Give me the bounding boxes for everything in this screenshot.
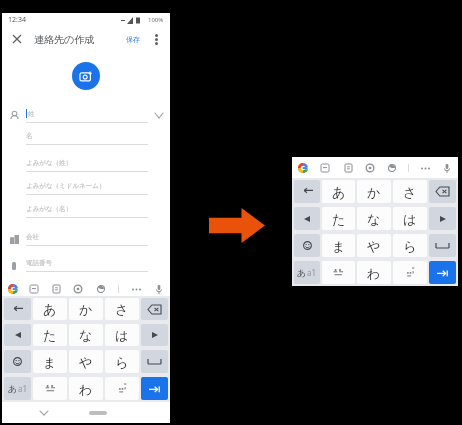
staticText: わ <box>79 381 93 397</box>
button[interactable]: 会社 <box>2 228 170 251</box>
staticText: た <box>332 211 346 227</box>
button[interactable]: Cursor left <box>294 207 320 230</box>
button[interactable]: Undo <box>4 298 31 320</box>
staticText: か <box>367 184 381 200</box>
staticText: は <box>403 211 417 227</box>
button[interactable]: Clipboard <box>50 283 62 295</box>
button[interactable]: Cursor right <box>429 207 456 230</box>
button[interactable]: Stickers <box>28 283 40 295</box>
staticText: あ <box>8 383 18 394</box>
button[interactable]: や <box>357 234 391 257</box>
button[interactable]: Themes <box>386 162 398 174</box>
staticText: か <box>79 301 93 317</box>
button[interactable]: わ <box>357 261 391 284</box>
button[interactable]: Google <box>297 162 308 173</box>
staticText: 12:34 <box>8 15 26 25</box>
button[interactable]: Back <box>35 404 53 422</box>
staticText: な <box>367 211 381 227</box>
button[interactable]: 保存 <box>124 35 142 44</box>
staticText: 名 <box>26 132 33 140</box>
button[interactable]: Home <box>89 411 107 415</box>
button[interactable]: な <box>357 207 391 230</box>
button[interactable]: よみがな（名） <box>2 200 170 223</box>
button[interactable]: さ <box>393 180 427 203</box>
button[interactable]: あ <box>322 180 355 203</box>
button[interactable]: ま <box>322 234 355 257</box>
button[interactable]: は <box>105 324 139 346</box>
staticText: 連絡先の作成 <box>34 33 95 46</box>
button[interactable]: Enter <box>429 261 456 284</box>
button[interactable]: More <box>419 162 431 174</box>
button[interactable]: Clipboard <box>342 162 354 174</box>
staticText: や <box>79 354 93 370</box>
button[interactable]: た <box>33 324 67 346</box>
staticText: a1 <box>18 383 28 394</box>
button[interactable]: 名 <box>2 127 170 150</box>
staticText: あ <box>297 267 307 278</box>
button[interactable]: た <box>322 207 355 230</box>
button[interactable]: さ <box>105 298 139 320</box>
button[interactable]: よみがな（姓） <box>2 154 170 177</box>
staticText: 姓 <box>28 110 35 118</box>
button[interactable]: Enter <box>141 377 168 400</box>
button[interactable]: Voice input <box>441 162 453 174</box>
button[interactable]: ら <box>105 350 139 373</box>
button[interactable]: Themes <box>95 283 107 295</box>
button[interactable]: わ <box>69 377 103 400</box>
button[interactable]: Settings <box>72 283 84 295</box>
button[interactable]: Cursor left <box>4 324 31 346</box>
button[interactable]: は <box>393 207 427 230</box>
staticText: 会社 <box>26 233 39 241</box>
staticText: 電話番号 <box>26 259 52 267</box>
staticText: ま <box>332 238 346 254</box>
staticText: さ <box>403 184 417 200</box>
staticText: よみがな（ミドルネーム） <box>26 182 106 190</box>
button[interactable]: Space <box>141 350 168 373</box>
button[interactable]: Backspace <box>429 180 456 203</box>
button[interactable]: Close <box>9 31 25 47</box>
button[interactable]: Punctuation <box>105 377 139 400</box>
button[interactable]: Punctuation <box>393 261 427 284</box>
staticText: a1 <box>307 267 317 278</box>
button[interactable]: ま <box>33 350 67 373</box>
staticText: は <box>115 327 129 343</box>
button[interactable]: や <box>69 350 103 373</box>
button[interactable]: Settings <box>364 162 376 174</box>
staticText: あ <box>43 301 57 317</box>
button[interactable]: Stickers <box>319 162 331 174</box>
button[interactable]: ら <box>393 234 427 257</box>
button[interactable]: か <box>357 180 391 203</box>
staticText: さ <box>115 301 129 317</box>
staticText: 保存 <box>126 35 140 44</box>
button[interactable]: 姓 <box>2 104 170 127</box>
button[interactable]: な <box>69 324 103 346</box>
button[interactable]: Backspace <box>141 298 168 320</box>
staticText: ら <box>403 238 417 254</box>
button[interactable]: Space <box>429 234 456 257</box>
button[interactable]: Voice input <box>153 283 165 295</box>
staticText: や <box>367 238 381 254</box>
staticText: ま <box>43 354 57 370</box>
button[interactable]: Emoji <box>4 350 31 373</box>
staticText: よみがな（名） <box>26 205 73 213</box>
staticText: あ <box>332 184 346 200</box>
button[interactable]: Switch input mode <box>4 377 31 400</box>
button[interactable]: よみがな（ミドルネーム） <box>2 177 170 200</box>
button[interactable]: あ <box>33 298 67 320</box>
button[interactable]: か <box>69 298 103 320</box>
button[interactable]: Google <box>7 283 18 294</box>
staticText: ら <box>115 354 129 370</box>
button[interactable]: Emoji <box>294 234 320 257</box>
button[interactable]: More options <box>149 32 163 46</box>
button[interactable]: More <box>130 283 142 295</box>
button[interactable]: Cursor right <box>141 324 168 346</box>
staticText: な <box>79 327 93 343</box>
button[interactable]: 電話番号 <box>2 254 170 277</box>
staticText: 100% <box>148 16 164 24</box>
button[interactable]: Switch input mode <box>294 261 320 284</box>
button[interactable]: Small character <box>322 261 355 284</box>
button[interactable]: Small character <box>33 377 67 400</box>
staticText: よみがな（姓） <box>26 159 73 167</box>
button[interactable]: Undo <box>294 180 320 203</box>
button[interactable]: Add photo <box>72 62 100 90</box>
